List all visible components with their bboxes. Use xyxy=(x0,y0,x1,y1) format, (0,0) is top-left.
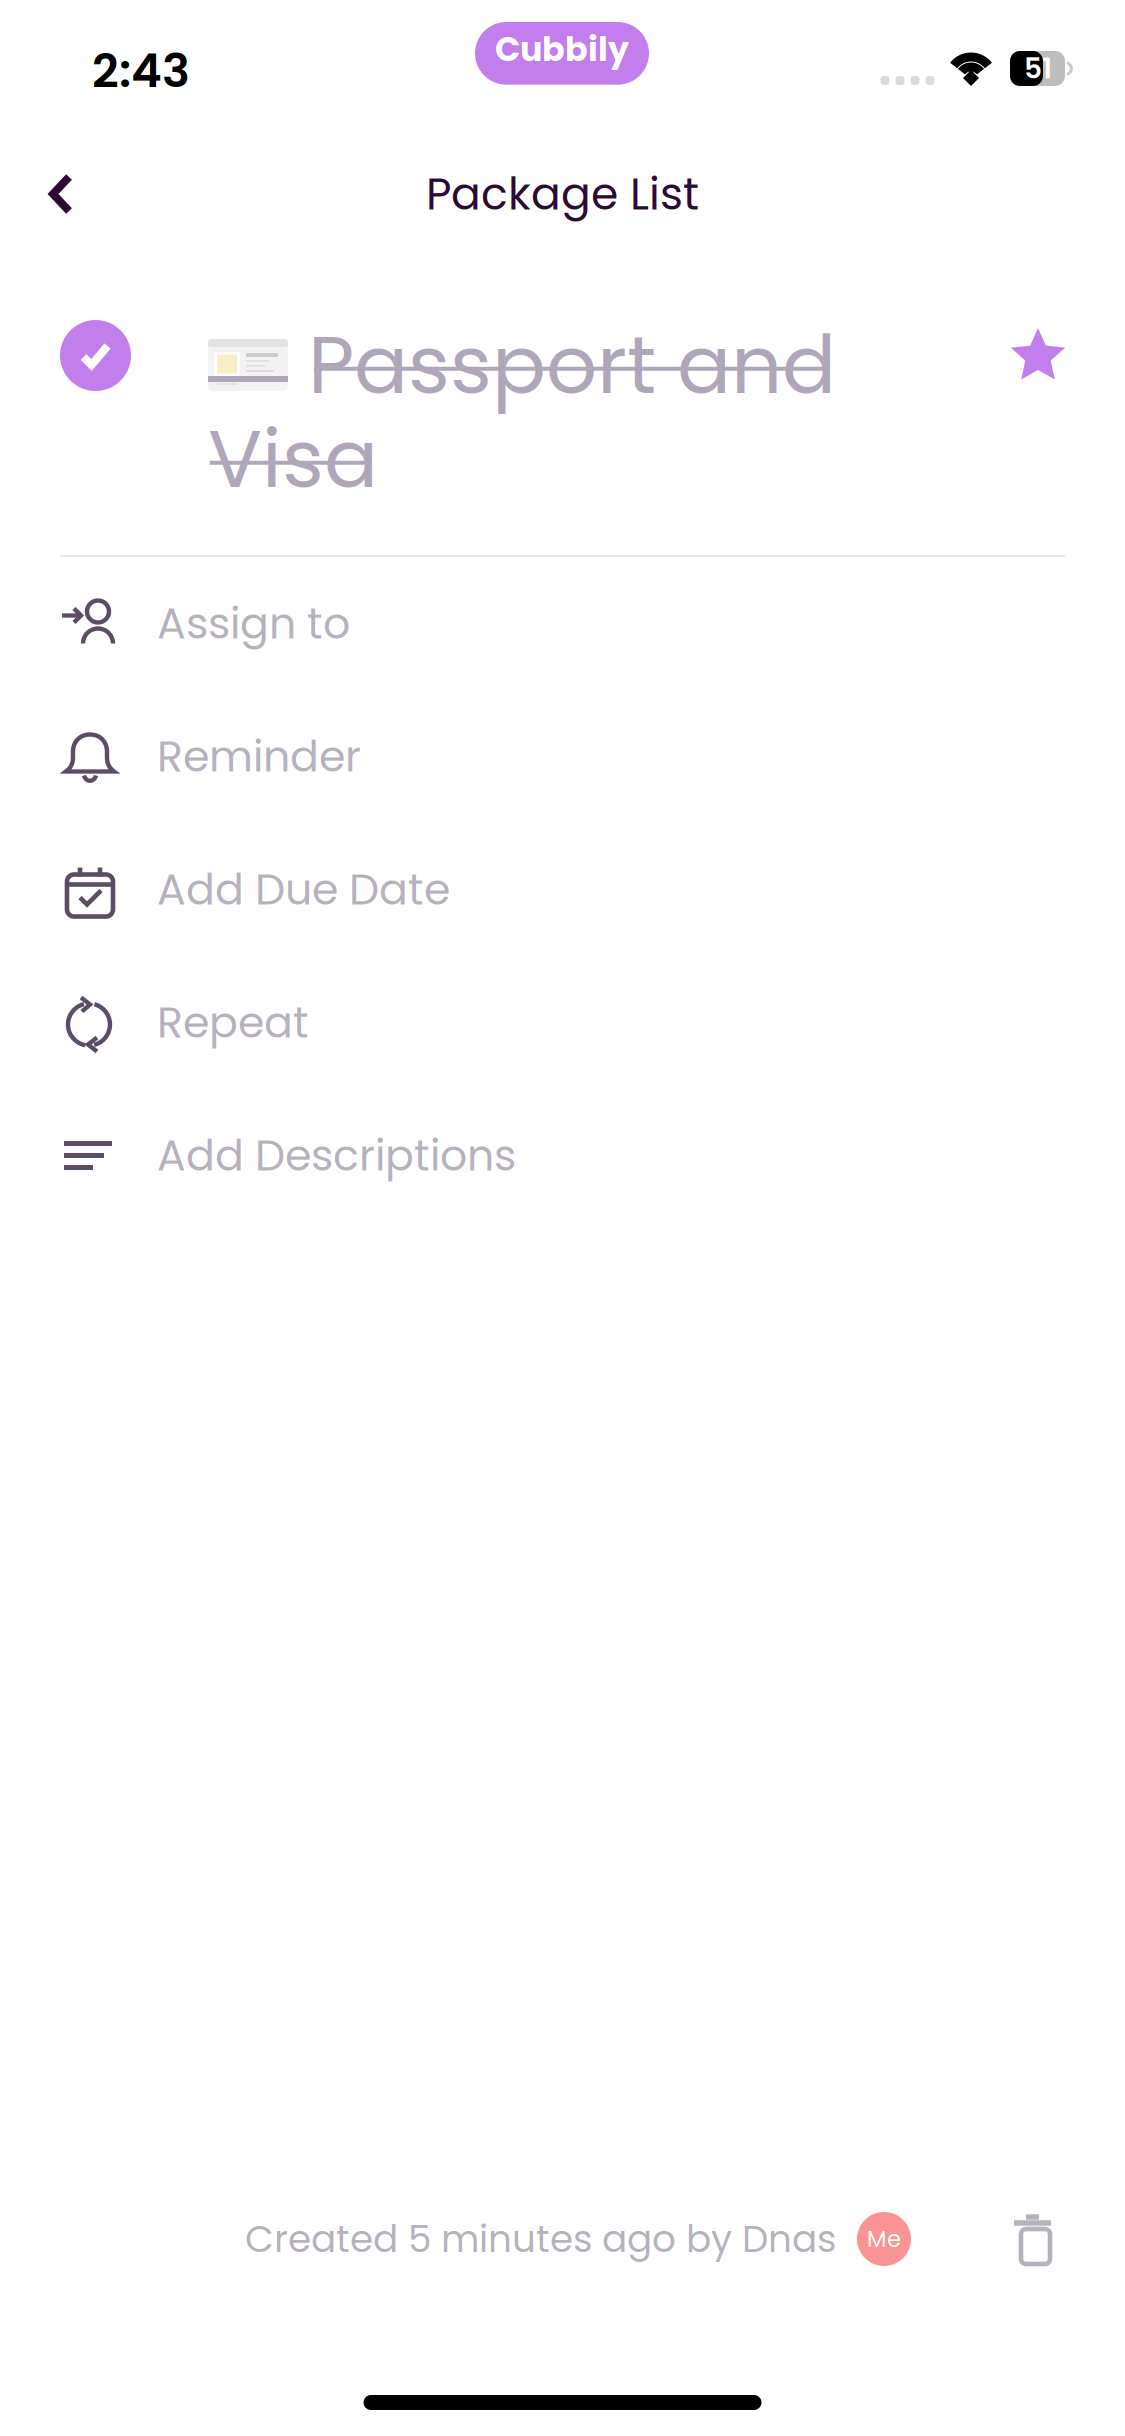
staticText: Visa xyxy=(208,403,378,515)
staticText: 1 xyxy=(1042,49,1052,88)
button[interactable]: Assign to xyxy=(60,557,1125,690)
button[interactable]: Add Descriptions xyxy=(60,1089,1125,1222)
button[interactable]: Reminder xyxy=(60,690,1125,823)
staticText: Reminder xyxy=(157,727,361,786)
staticText: Created 5 minutes ago by Dnas xyxy=(245,2213,836,2265)
staticText: Passport and xyxy=(308,309,836,421)
staticText: Repeat xyxy=(157,993,309,1052)
staticText: Me xyxy=(867,2223,901,2255)
staticText: Add Descriptions xyxy=(157,1126,516,1185)
button[interactable]: Add Due Date xyxy=(60,823,1125,956)
button[interactable]: Back xyxy=(16,140,106,248)
button[interactable]: Unfavorite xyxy=(1009,320,1067,426)
staticText: 5 xyxy=(1024,49,1042,88)
staticText: 2:43 xyxy=(92,38,190,103)
button[interactable]: Delete xyxy=(911,2195,1088,2283)
button[interactable]: Repeat xyxy=(60,956,1125,1089)
staticText: Package List xyxy=(426,163,699,225)
staticText: Assign to xyxy=(157,594,350,653)
staticText: Add Due Date xyxy=(157,860,450,919)
staticText: Cubbily xyxy=(495,26,629,73)
button[interactable]: Mark incomplete xyxy=(60,320,131,418)
